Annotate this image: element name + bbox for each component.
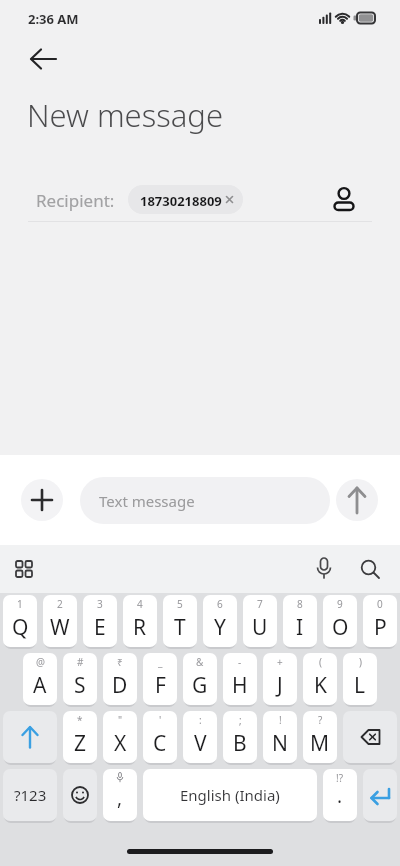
button[interactable]: ?123 bbox=[3, 769, 57, 821]
button[interactable]: * bbox=[63, 711, 97, 763]
button[interactable]: 1 bbox=[3, 595, 37, 647]
button[interactable]: 7 bbox=[243, 595, 277, 647]
staticText: ; bbox=[239, 713, 242, 727]
staticText: New message bbox=[27, 94, 224, 136]
button[interactable]: 5 bbox=[163, 595, 197, 647]
staticText: ?123 bbox=[14, 785, 47, 805]
button[interactable]: 3 bbox=[83, 595, 117, 647]
staticText: B bbox=[233, 729, 247, 758]
button[interactable]: 0 bbox=[363, 595, 397, 647]
button[interactable]: _ bbox=[143, 653, 177, 705]
staticText: ! bbox=[279, 713, 282, 727]
staticText: X bbox=[114, 729, 127, 758]
staticText: : bbox=[199, 713, 202, 727]
staticText: " bbox=[118, 713, 123, 727]
staticText: + bbox=[277, 655, 283, 669]
button[interactable]: 9 bbox=[323, 595, 357, 647]
staticText: 2 bbox=[57, 597, 63, 611]
button[interactable] bbox=[354, 553, 386, 585]
staticText: & bbox=[196, 655, 204, 669]
button[interactable] bbox=[363, 769, 397, 821]
button[interactable]: + bbox=[263, 653, 297, 705]
staticText: 18730218809 bbox=[140, 192, 222, 210]
staticText: P bbox=[374, 613, 387, 642]
button[interactable]: 18730218809 bbox=[128, 185, 243, 214]
staticText: !? bbox=[336, 771, 344, 785]
staticText: 6 bbox=[217, 597, 223, 611]
staticText: I bbox=[296, 613, 304, 642]
staticText: K bbox=[314, 671, 327, 700]
staticText: 8 bbox=[297, 597, 303, 611]
button[interactable]: 8 bbox=[283, 595, 317, 647]
button[interactable]: 2 bbox=[43, 595, 77, 647]
button[interactable]: Text message bbox=[80, 477, 330, 524]
staticText: M bbox=[310, 729, 330, 758]
button[interactable]: ( bbox=[303, 653, 337, 705]
staticText: G bbox=[192, 671, 208, 700]
button[interactable]: & bbox=[183, 653, 217, 705]
button[interactable]: ! bbox=[263, 711, 297, 763]
button[interactable] bbox=[20, 44, 64, 74]
staticText: Z bbox=[74, 729, 87, 758]
staticText: Y bbox=[214, 613, 226, 642]
staticText: F bbox=[155, 671, 166, 700]
button[interactable] bbox=[63, 769, 97, 821]
staticText: 9 bbox=[337, 597, 343, 611]
staticText: ( bbox=[319, 655, 322, 669]
button[interactable]: !? bbox=[323, 769, 357, 821]
staticText: S bbox=[74, 671, 86, 700]
staticText: , bbox=[117, 785, 123, 811]
staticText: ' bbox=[159, 713, 162, 727]
staticText: O bbox=[332, 613, 349, 642]
button[interactable] bbox=[343, 711, 397, 763]
staticText: _ bbox=[158, 655, 163, 669]
button[interactable]: ? bbox=[303, 711, 337, 763]
button[interactable] bbox=[336, 479, 378, 521]
staticText: - bbox=[238, 655, 242, 669]
button[interactable]: - bbox=[223, 653, 257, 705]
staticText: 0 bbox=[377, 597, 383, 611]
staticText: @ bbox=[36, 655, 45, 669]
button[interactable]: ; bbox=[223, 711, 257, 763]
button[interactable]: English (India) bbox=[143, 769, 317, 821]
staticText: N bbox=[272, 729, 288, 758]
staticText: ) bbox=[359, 655, 362, 669]
staticText: H bbox=[232, 671, 248, 700]
staticText: V bbox=[194, 729, 207, 758]
button[interactable]: @ bbox=[23, 653, 57, 705]
button[interactable]: # bbox=[63, 653, 97, 705]
staticText: 7 bbox=[257, 597, 263, 611]
button[interactable] bbox=[3, 711, 57, 763]
button[interactable]: 6 bbox=[203, 595, 237, 647]
button[interactable] bbox=[308, 553, 340, 585]
staticText: R bbox=[133, 613, 147, 642]
staticText: 4 bbox=[137, 597, 143, 611]
staticText: L bbox=[354, 671, 366, 700]
staticText: ? bbox=[318, 713, 323, 727]
staticText: # bbox=[77, 655, 84, 669]
button[interactable]: ) bbox=[343, 653, 377, 705]
staticText: E bbox=[94, 613, 106, 642]
staticText: Text message bbox=[99, 491, 195, 511]
button[interactable]: : bbox=[183, 711, 217, 763]
staticText: W bbox=[50, 613, 70, 642]
staticText: T bbox=[174, 613, 186, 642]
staticText: Q bbox=[12, 613, 29, 642]
staticText: 1 bbox=[17, 597, 23, 611]
button[interactable]: , bbox=[103, 769, 137, 821]
button[interactable] bbox=[8, 553, 40, 585]
button[interactable]: " bbox=[103, 711, 137, 763]
button[interactable] bbox=[326, 180, 362, 216]
staticText: . bbox=[337, 783, 343, 809]
staticText: C bbox=[153, 729, 167, 758]
staticText: 2:36 AM bbox=[28, 10, 79, 28]
staticText: ₹ bbox=[117, 655, 123, 669]
button[interactable] bbox=[21, 479, 63, 521]
staticText: * bbox=[77, 713, 83, 727]
staticText: A bbox=[33, 671, 47, 700]
button[interactable]: 4 bbox=[123, 595, 157, 647]
button[interactable]: ₹ bbox=[103, 653, 137, 705]
staticText: J bbox=[277, 671, 283, 700]
staticText: 5 bbox=[177, 597, 183, 611]
button[interactable]: ' bbox=[143, 711, 177, 763]
